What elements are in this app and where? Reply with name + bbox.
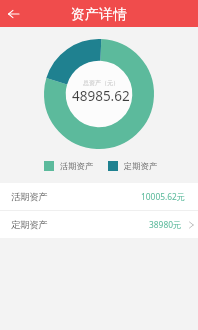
button[interactable]: Back bbox=[0, 1, 26, 27]
staticText: 定期资产 bbox=[11, 219, 48, 231]
staticText: 48985.62 bbox=[72, 87, 130, 105]
staticText: 活期资产 bbox=[11, 191, 48, 203]
button[interactable]: 活期资产 bbox=[0, 183, 198, 210]
button[interactable]: 定期资产 bbox=[0, 211, 198, 238]
staticText: 38980元 bbox=[149, 219, 182, 230]
staticText: 总资产（元） bbox=[83, 79, 119, 87]
staticText: 定期资产 bbox=[124, 161, 158, 171]
staticText: 10005.62元 bbox=[141, 191, 186, 202]
staticText: 资产详情 bbox=[71, 6, 127, 24]
staticText: 活期资产 bbox=[60, 161, 94, 171]
